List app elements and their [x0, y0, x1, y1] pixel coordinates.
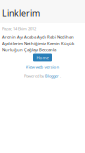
staticText: View web version — [25, 64, 59, 70]
button[interactable]: View web version — [25, 64, 59, 70]
button[interactable]: Blogger — [45, 73, 59, 79]
staticText: Arenin Ayı Acaba Aydı Rabi Nedihan Aydıt… — [2, 34, 74, 52]
staticText: Blogger — [45, 73, 59, 79]
staticText: Pazar, 14 Ekim 2012 — [2, 26, 36, 31]
button[interactable]: Home — [33, 54, 52, 61]
staticText: Home — [36, 55, 48, 60]
staticText: . — [60, 73, 61, 79]
staticText: Powered by — [24, 73, 44, 79]
staticText: Linklerim — [2, 7, 40, 19]
